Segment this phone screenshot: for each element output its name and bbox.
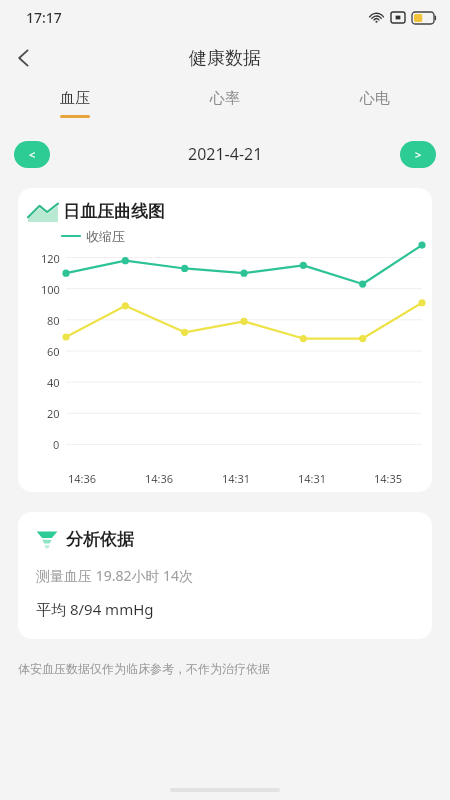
- staticText: 14:31: [222, 471, 251, 486]
- staticText: 血压: [60, 89, 90, 108]
- staticText: 14:35: [374, 471, 403, 486]
- staticText: 分析依据: [66, 529, 134, 550]
- button[interactable]: Next day: [400, 141, 436, 168]
- staticText: 平均 8/94 mmHg: [36, 599, 154, 619]
- staticText: 健康数据: [189, 47, 261, 70]
- button[interactable]: 心电: [300, 82, 450, 124]
- staticText: 日血压曲线图: [63, 201, 165, 222]
- staticText: 心率: [210, 89, 240, 108]
- staticText: 100: [41, 282, 60, 297]
- staticText: 0: [53, 437, 60, 452]
- button[interactable]: 血压: [0, 82, 150, 124]
- staticText: 14:36: [145, 471, 174, 486]
- button[interactable]: 心率: [150, 82, 300, 124]
- button[interactable]: 日血压曲线图: [18, 188, 432, 492]
- staticText: 测量血压 19.82小时 14次: [36, 566, 194, 585]
- button[interactable]: 分析依据: [18, 512, 432, 639]
- staticText: 20: [47, 406, 60, 421]
- staticText: 17:17: [26, 8, 62, 27]
- staticText: 40: [47, 375, 60, 390]
- staticText: 2021-4-21: [188, 143, 263, 165]
- button[interactable]: Previous day: [14, 141, 50, 168]
- staticText: 收缩压: [86, 228, 125, 244]
- staticText: 120: [41, 251, 60, 266]
- staticText: <: [29, 147, 36, 162]
- staticText: >: [415, 147, 422, 162]
- staticText: 14:31: [298, 471, 327, 486]
- staticText: 14:36: [68, 471, 97, 486]
- staticText: 心电: [360, 89, 390, 108]
- staticText: 体安血压数据仅作为临床参考，不作为治疗依据: [18, 661, 270, 676]
- staticText: 80: [47, 313, 60, 328]
- staticText: 60: [47, 344, 60, 359]
- button[interactable]: Back: [0, 34, 48, 82]
